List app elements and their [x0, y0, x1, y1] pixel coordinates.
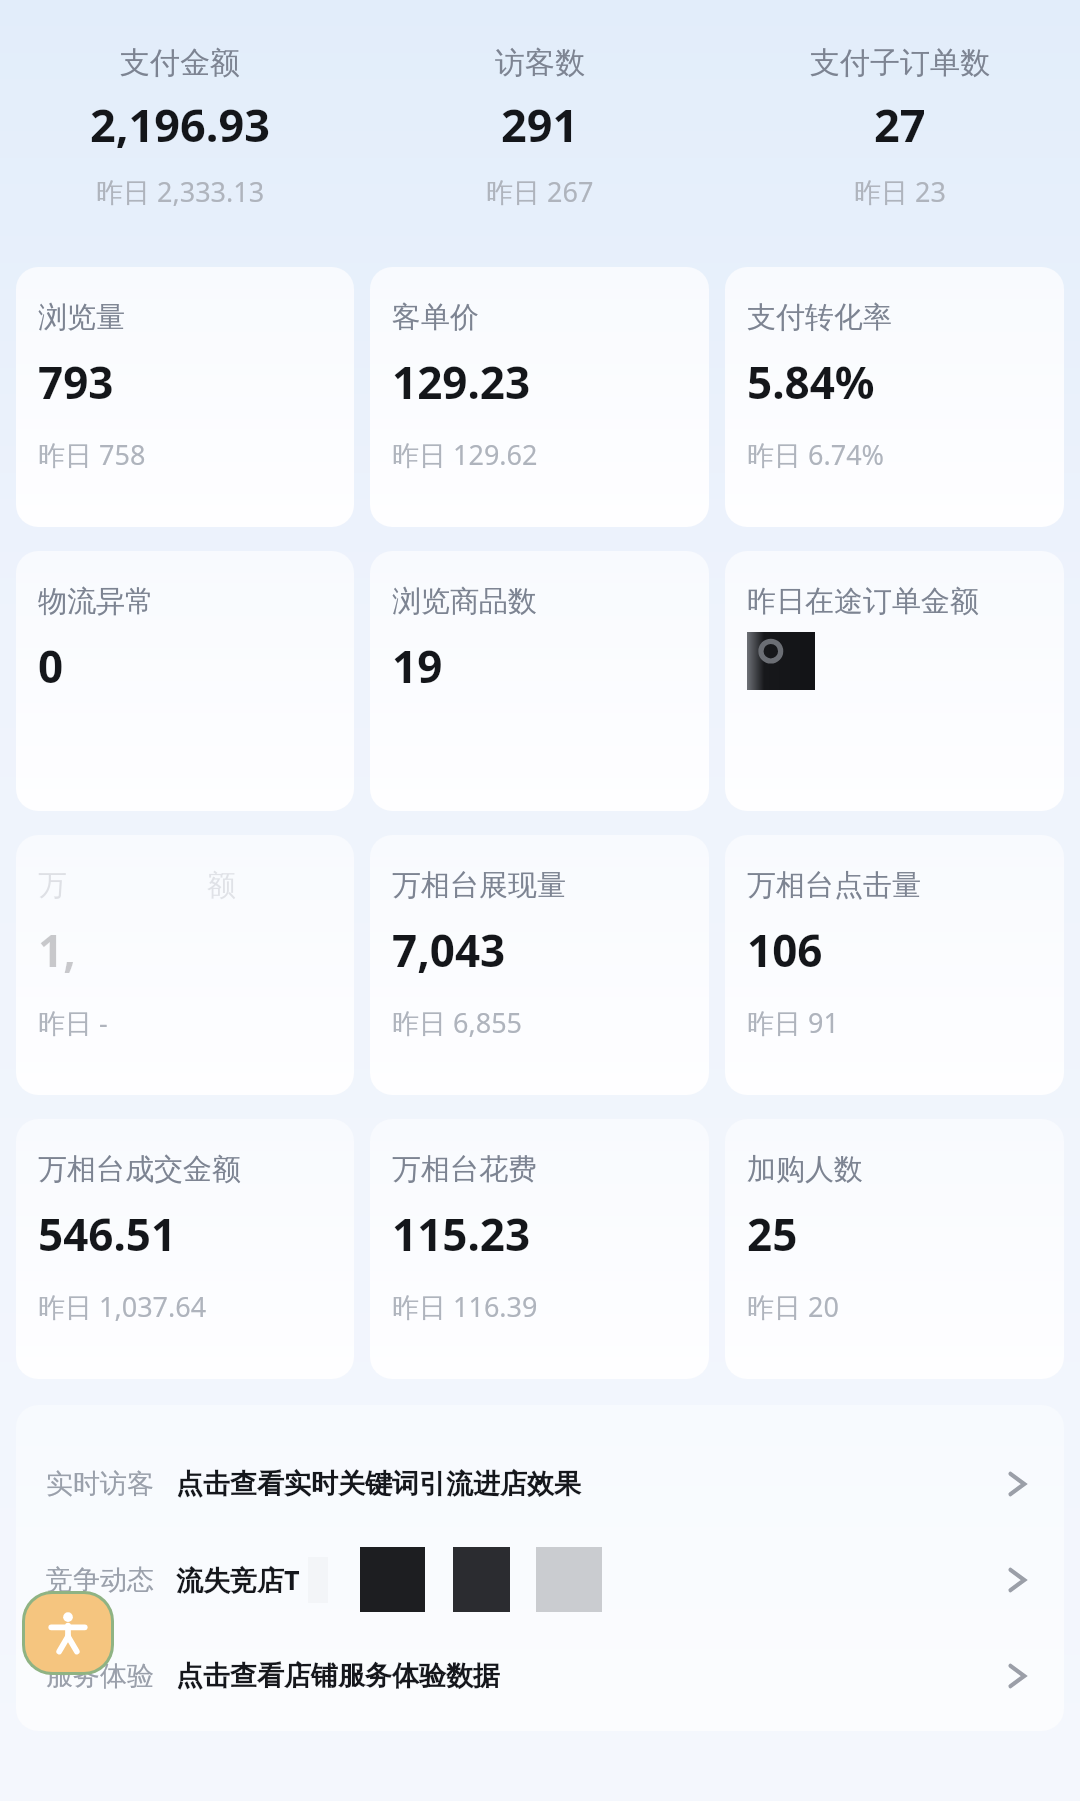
button[interactable]: 万相台成交金额	[16, 1119, 354, 1379]
staticText: 点击查看实时关键词引流进店效果	[176, 1467, 581, 1501]
staticText: 291	[501, 94, 579, 155]
staticText: 支付转化率	[747, 299, 892, 336]
staticText: 129.23	[392, 352, 531, 412]
button[interactable]: 支付转化率	[725, 267, 1064, 527]
staticText: 支付金额	[120, 44, 240, 82]
button[interactable]: 服务体验	[16, 1643, 1064, 1708]
staticText: 客单价	[392, 299, 479, 336]
button[interactable]: 万	[16, 835, 354, 1095]
staticText: 昨日 129.62	[392, 436, 538, 473]
staticText: 万相台花费	[392, 1151, 537, 1188]
staticText: 19	[392, 636, 443, 696]
staticText: 昨日 -	[38, 1004, 108, 1041]
staticText: 昨日在途订单金额	[747, 583, 979, 620]
staticText: 竞争动态	[46, 1563, 154, 1597]
staticText: 0	[38, 636, 64, 696]
staticText: 万相台点击量	[747, 867, 921, 904]
button[interactable]: 加购人数	[725, 1119, 1064, 1379]
button[interactable]: 万相台花费	[370, 1119, 709, 1379]
staticText: 昨日 20	[747, 1288, 839, 1325]
button[interactable]: 实时访客	[16, 1451, 1064, 1516]
staticText: 2,196.93	[90, 94, 270, 155]
staticText: 万相台展现量	[392, 867, 566, 904]
button[interactable]: 竞争动态	[16, 1547, 1064, 1612]
staticText: 25	[747, 1204, 798, 1264]
staticText: 服务体验	[46, 1659, 154, 1693]
button[interactable]: 昨日在途订单金额	[725, 551, 1064, 811]
staticText: 物流异常	[38, 583, 154, 620]
staticText: 546.51	[38, 1204, 177, 1264]
staticText: 昨日 116.39	[392, 1288, 538, 1325]
staticText: 昨日 2,333.13	[96, 173, 265, 210]
staticText: 昨日 23	[854, 173, 946, 210]
staticText: 访客数	[495, 44, 585, 82]
staticText: 昨日 1,037.64	[38, 1288, 207, 1325]
staticText: 7,043	[392, 920, 506, 980]
staticText: 加购人数	[747, 1151, 863, 1188]
staticText: 昨日 6,855	[392, 1004, 523, 1041]
staticText: 实时访客	[46, 1467, 154, 1501]
button[interactable]: 万相台点击量	[725, 835, 1064, 1095]
staticText: 浏览商品数	[392, 583, 537, 620]
button[interactable]: 支付金额	[0, 44, 360, 210]
button[interactable]: Accessibility	[25, 1594, 111, 1672]
staticText: 万相台成交金额	[38, 1151, 241, 1188]
staticText: 115.23	[392, 1204, 531, 1264]
staticText: 昨日 758	[38, 436, 146, 473]
button[interactable]: 物流异常	[16, 551, 354, 811]
button[interactable]: 浏览量	[16, 267, 354, 527]
staticText: 5.84%	[747, 352, 875, 412]
staticText: 额	[207, 867, 236, 904]
button[interactable]: 浏览商品数	[370, 551, 709, 811]
staticText: 支付子订单数	[810, 44, 990, 82]
button[interactable]: 支付子订单数	[720, 44, 1080, 210]
staticText: 106	[747, 920, 823, 980]
staticText: 昨日 6.74%	[747, 436, 885, 473]
staticText: 昨日 267	[486, 173, 594, 210]
staticText: 浏览量	[38, 299, 125, 336]
button[interactable]: 万相台展现量	[370, 835, 709, 1095]
staticText: 793	[38, 352, 114, 412]
button[interactable]: 访客数	[360, 44, 720, 210]
staticText: 流失竞店T	[176, 1561, 300, 1598]
staticText: 27	[874, 94, 926, 155]
staticText: 昨日 91	[747, 1004, 839, 1041]
button[interactable]: 客单价	[370, 267, 709, 527]
staticText: 点击查看店铺服务体验数据	[176, 1659, 500, 1693]
staticText: 1,	[38, 920, 76, 980]
staticText: 万	[38, 867, 67, 904]
